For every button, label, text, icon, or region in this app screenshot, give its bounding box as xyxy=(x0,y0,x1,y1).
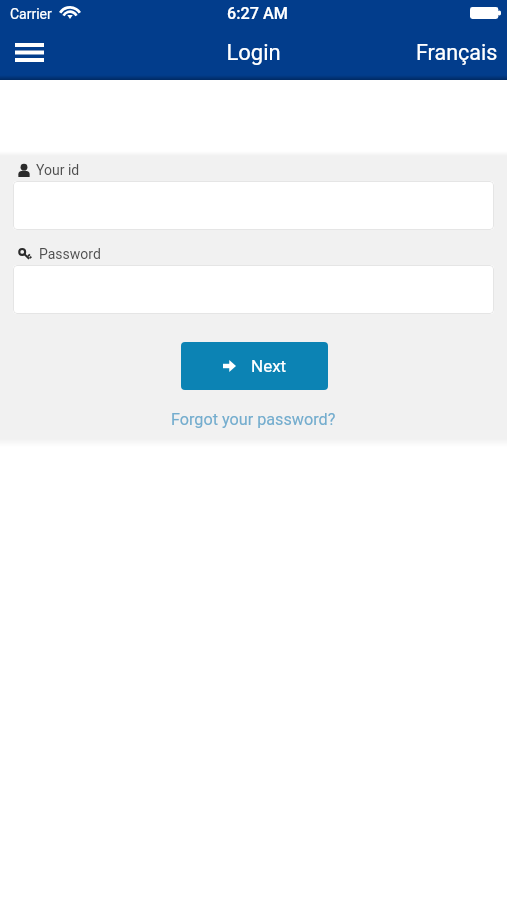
button[interactable] xyxy=(13,265,494,314)
button[interactable]: Menu xyxy=(0,28,58,78)
button[interactable]: Français xyxy=(404,28,507,78)
staticText: Password xyxy=(39,246,101,262)
button[interactable]: Next xyxy=(181,342,328,390)
staticText: Next xyxy=(251,356,287,376)
staticText: Forgot your password? xyxy=(171,410,336,429)
staticText: 6:27 AM xyxy=(227,4,288,23)
staticText: Login xyxy=(0,40,507,66)
staticText: Français xyxy=(416,40,498,65)
button[interactable]: Forgot your password? xyxy=(165,404,342,435)
button[interactable] xyxy=(13,181,494,230)
staticText: Carrier xyxy=(10,6,52,22)
staticText: Your id xyxy=(36,162,80,178)
